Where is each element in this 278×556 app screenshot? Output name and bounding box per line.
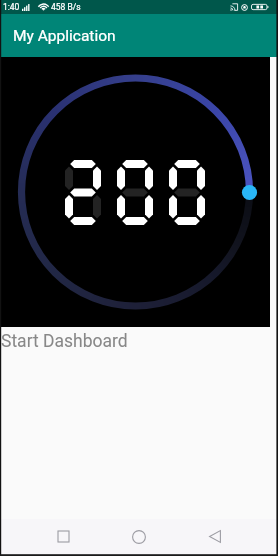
button[interactable]: Back [197, 519, 233, 554]
staticText: Start Dashboard [1, 331, 128, 352]
button[interactable]: Start Dashboard [0, 327, 278, 356]
other: Do not disturb [241, 4, 248, 11]
other: Battery [251, 3, 269, 11]
button[interactable]: My Application [0, 14, 278, 57]
button[interactable]: Home [121, 519, 157, 554]
staticText: My Application [13, 27, 116, 45]
other: Cast [230, 3, 238, 11]
staticText: 458 B/s [51, 2, 81, 12]
button[interactable]: Recent apps [45, 519, 81, 554]
staticText: 1:40 [3, 2, 20, 12]
